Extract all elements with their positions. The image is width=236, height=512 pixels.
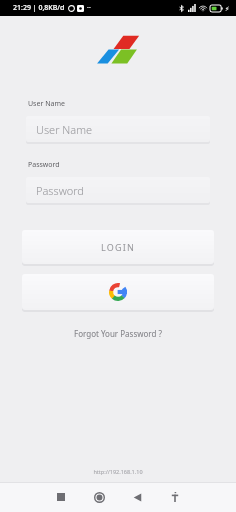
button[interactable]: User Name bbox=[26, 116, 210, 142]
staticText: User Name bbox=[36, 122, 93, 137]
button[interactable]: Accessibility bbox=[162, 484, 188, 510]
button[interactable]: Password bbox=[26, 177, 210, 203]
button[interactable]: Back bbox=[124, 484, 150, 510]
button[interactable]: Home bbox=[86, 484, 112, 510]
staticText: LOGIN bbox=[101, 241, 136, 253]
staticText: User Name bbox=[28, 99, 65, 109]
staticText: ·· bbox=[87, 3, 91, 13]
button[interactable]: Recent apps bbox=[48, 484, 74, 510]
staticText: 21:29 | 0,8KB/d bbox=[13, 3, 65, 13]
button[interactable]: Sign in with Google bbox=[22, 274, 214, 310]
staticText: ⚡ bbox=[225, 5, 230, 12]
staticText: Password bbox=[28, 160, 60, 170]
button[interactable]: Login bbox=[22, 230, 214, 264]
button[interactable]: Forgot Your Password ? bbox=[64, 324, 172, 343]
staticText: Forgot Your Password ? bbox=[74, 328, 162, 339]
staticText: http://192.168.1.10 bbox=[93, 468, 143, 475]
staticText: Password bbox=[36, 183, 84, 198]
